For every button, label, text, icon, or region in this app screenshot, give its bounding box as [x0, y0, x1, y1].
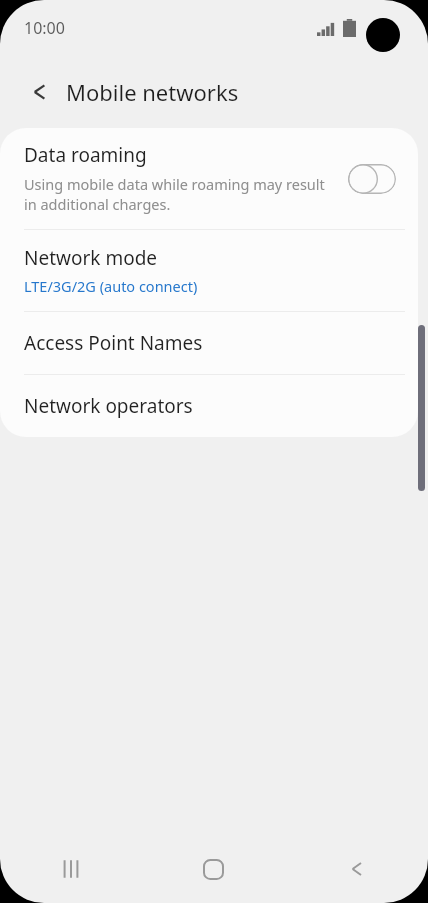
button[interactable]: Network operators — [0, 375, 418, 437]
button[interactable]: Recents — [0, 835, 142, 903]
button[interactable]: Data roaming toggle, off — [348, 164, 396, 194]
staticText: Mobile networks — [66, 77, 239, 107]
staticText: 10:00 — [24, 17, 65, 39]
button[interactable]: Network mode — [0, 230, 418, 311]
staticText: Data roaming — [24, 142, 147, 168]
button[interactable]: Data roaming — [0, 128, 418, 229]
staticText: Access Point Names — [24, 330, 203, 356]
staticText: Network mode — [24, 245, 158, 271]
button[interactable]: Access Point Names — [0, 312, 418, 374]
button[interactable]: Back — [285, 835, 428, 903]
staticText: LTE/3G/2G (auto connect) — [24, 276, 198, 296]
button[interactable]: Back — [16, 68, 64, 116]
staticText: Network operators — [24, 393, 193, 419]
button[interactable]: Home — [142, 835, 285, 903]
staticText: Using mobile data while roaming may resu… — [24, 174, 334, 215]
